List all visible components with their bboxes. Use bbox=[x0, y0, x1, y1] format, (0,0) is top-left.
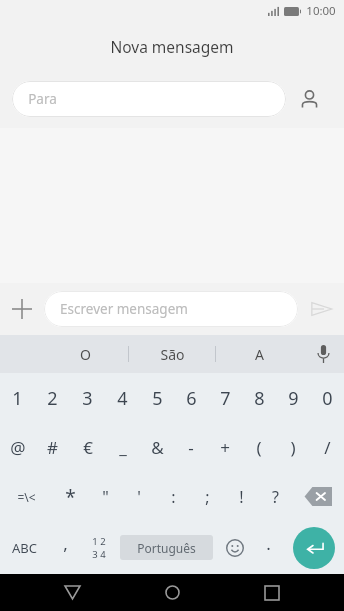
button[interactable]: ) bbox=[276, 423, 310, 472]
staticText: € bbox=[83, 436, 93, 459]
button[interactable]: 1 2 bbox=[81, 521, 116, 574]
staticText: - bbox=[188, 436, 194, 459]
staticText: O bbox=[80, 345, 91, 364]
staticText: 6 bbox=[186, 386, 197, 411]
button[interactable]: 1 bbox=[0, 373, 35, 423]
staticText: São bbox=[160, 345, 185, 364]
staticText: 5 bbox=[152, 386, 163, 411]
button[interactable]: ' bbox=[122, 472, 156, 521]
staticText: . bbox=[266, 532, 271, 555]
button[interactable]: Enviar bbox=[298, 283, 344, 335]
button[interactable]: 8 bbox=[242, 373, 276, 423]
staticText: 3 bbox=[82, 386, 93, 411]
button[interactable]: € bbox=[70, 423, 105, 472]
button[interactable]: 0 bbox=[310, 373, 344, 423]
button[interactable]: . bbox=[252, 521, 284, 574]
staticText: 4 bbox=[117, 386, 128, 411]
staticText: & bbox=[151, 436, 164, 459]
button[interactable]: * bbox=[53, 472, 88, 521]
staticText: + bbox=[220, 436, 230, 459]
staticText: 10:00 bbox=[306, 3, 336, 19]
staticText: Escrever mensagem bbox=[60, 300, 188, 318]
button[interactable]: 2 bbox=[35, 373, 70, 423]
button[interactable]: & bbox=[140, 423, 174, 472]
button[interactable]: 3 bbox=[70, 373, 105, 423]
staticText: _ bbox=[119, 436, 127, 459]
staticText: 0 bbox=[322, 386, 333, 411]
staticText: 1 2 bbox=[92, 535, 106, 548]
button[interactable]: ; bbox=[190, 472, 224, 521]
button[interactable]: Início bbox=[152, 574, 192, 611]
staticText: 8 bbox=[254, 386, 265, 411]
staticText: 2 bbox=[47, 386, 58, 411]
staticText: : bbox=[171, 486, 176, 508]
button[interactable]: _ bbox=[105, 423, 140, 472]
staticText: A bbox=[255, 345, 264, 364]
staticText: # bbox=[47, 436, 58, 459]
button[interactable]: Recentes bbox=[252, 574, 292, 611]
button[interactable]: 6 bbox=[174, 373, 208, 423]
staticText: , bbox=[63, 532, 68, 555]
button[interactable]: Adicionar anexo bbox=[0, 283, 44, 335]
button[interactable]: 9 bbox=[276, 373, 310, 423]
button[interactable]: - bbox=[174, 423, 208, 472]
button[interactable]: São bbox=[129, 335, 215, 373]
staticText: 1 bbox=[12, 386, 23, 411]
button[interactable]: Para bbox=[12, 81, 286, 117]
button[interactable]: Português bbox=[120, 535, 213, 560]
button[interactable]: ABC bbox=[0, 521, 49, 574]
button[interactable]: # bbox=[35, 423, 70, 472]
button[interactable]: A bbox=[216, 335, 302, 373]
button[interactable]: , bbox=[49, 521, 81, 574]
button[interactable]: / bbox=[310, 423, 344, 472]
staticText: Português bbox=[137, 540, 196, 556]
staticText: 3 4 bbox=[92, 548, 106, 561]
button[interactable]: O bbox=[42, 335, 128, 373]
staticText: =\< bbox=[17, 489, 36, 505]
staticText: ! bbox=[239, 486, 244, 508]
button[interactable]: " bbox=[88, 472, 122, 521]
button[interactable]: Enter bbox=[293, 527, 335, 569]
button[interactable]: Escrever mensagem bbox=[44, 291, 298, 327]
button[interactable]: : bbox=[156, 472, 190, 521]
button[interactable]: ! bbox=[224, 472, 258, 521]
button[interactable]: Voz bbox=[302, 335, 344, 373]
staticText: ) bbox=[290, 436, 296, 459]
button[interactable]: 5 bbox=[140, 373, 174, 423]
button[interactable]: Escolher contacto bbox=[286, 70, 332, 128]
button[interactable]: + bbox=[208, 423, 242, 472]
button[interactable]: @ bbox=[0, 423, 35, 472]
button[interactable]: ? bbox=[258, 472, 292, 521]
staticText: Para bbox=[28, 90, 57, 108]
staticText: ABC bbox=[12, 539, 37, 557]
staticText: ; bbox=[205, 486, 210, 508]
staticText: @ bbox=[10, 436, 26, 459]
staticText: / bbox=[324, 436, 331, 459]
button[interactable]: Emoji bbox=[217, 521, 252, 574]
staticText: Nova mensagem bbox=[110, 36, 234, 57]
button[interactable]: Voltar bbox=[52, 574, 92, 611]
staticText: * bbox=[65, 484, 76, 510]
staticText: 7 bbox=[220, 386, 231, 411]
button[interactable]: Retrocesso bbox=[292, 472, 344, 521]
button[interactable]: ( bbox=[242, 423, 276, 472]
staticText: ' bbox=[137, 486, 141, 508]
staticText: 9 bbox=[288, 386, 299, 411]
staticText: ( bbox=[256, 436, 262, 459]
staticText: ? bbox=[272, 486, 279, 508]
staticText: " bbox=[102, 486, 109, 508]
button[interactable]: 7 bbox=[208, 373, 242, 423]
button[interactable]: 4 bbox=[105, 373, 140, 423]
button[interactable]: =\< bbox=[0, 472, 53, 521]
